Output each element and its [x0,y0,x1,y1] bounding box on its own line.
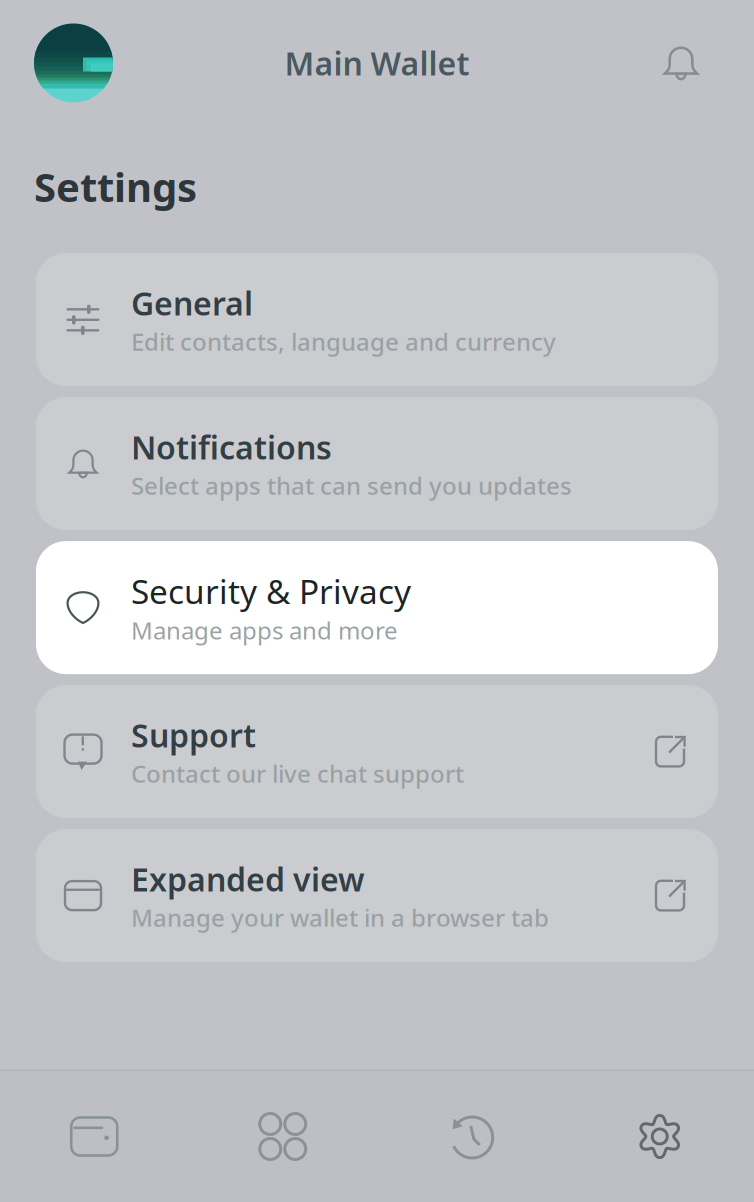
button[interactable]: Account [34,23,113,102]
staticText: Edit contacts, language and currency [131,325,556,357]
button[interactable]: General [36,253,718,386]
staticText: Expanded view [131,858,365,900]
button[interactable]: History [377,1071,565,1202]
button[interactable]: Support [36,685,718,818]
button[interactable]: Security & Privacy [36,541,718,674]
button[interactable]: Wallet [0,1071,188,1202]
button[interactable]: Notifications [36,397,718,530]
button[interactable]: Settings [565,1071,754,1202]
staticText: Security & Privacy [131,569,411,613]
staticText: Settings [34,160,197,213]
staticText: Manage apps and more [131,614,398,646]
button[interactable]: Notifications [658,40,704,86]
staticText: Contact our live chat support [131,757,464,789]
staticText: Manage your wallet in a browser tab [131,901,549,933]
staticText: Select apps that can send you updates [131,469,572,501]
staticText: Main Wallet [284,42,469,84]
staticText: Support [131,714,256,756]
button[interactable]: Apps [188,1071,377,1202]
button[interactable]: Expanded view [36,829,718,962]
staticText: Notifications [131,426,332,468]
staticText: General [131,282,253,324]
